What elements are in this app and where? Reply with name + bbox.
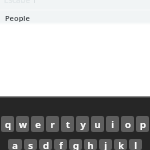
staticText: p xyxy=(140,118,146,131)
button[interactable]: o xyxy=(121,116,134,132)
staticText: j xyxy=(104,139,107,150)
button[interactable]: u xyxy=(91,116,104,132)
button[interactable]: s xyxy=(24,139,37,150)
button[interactable]: g xyxy=(69,139,82,150)
staticText: a xyxy=(12,139,18,150)
button[interactable]: e xyxy=(31,116,44,132)
button[interactable]: d xyxy=(39,139,52,150)
button[interactable]: w xyxy=(16,116,29,132)
button[interactable]: l xyxy=(129,139,142,150)
button[interactable]: q xyxy=(1,116,14,132)
staticText: s xyxy=(28,139,33,150)
button[interactable]: i xyxy=(106,116,119,132)
button[interactable]: People xyxy=(0,11,150,22)
staticText: Escape xyxy=(4,0,31,3)
button[interactable]: j xyxy=(99,139,112,150)
staticText: g xyxy=(73,139,79,150)
staticText: y xyxy=(80,118,86,131)
staticText: People xyxy=(5,13,30,23)
staticText: k xyxy=(118,139,124,150)
staticText: i xyxy=(111,118,114,131)
staticText: r xyxy=(50,118,55,131)
button[interactable]: p xyxy=(136,116,149,132)
button[interactable]: r xyxy=(46,116,59,132)
button[interactable]: f xyxy=(54,139,67,150)
button[interactable]: t xyxy=(61,116,74,132)
button[interactable]: k xyxy=(114,139,127,150)
staticText: h xyxy=(87,139,94,150)
button[interactable]: h xyxy=(84,139,97,150)
staticText: f xyxy=(59,139,63,150)
staticText: d xyxy=(43,139,49,150)
staticText: u xyxy=(94,118,101,131)
button[interactable]: y xyxy=(76,116,89,132)
staticText: w xyxy=(19,118,27,131)
staticText: l xyxy=(134,139,137,150)
button[interactable]: a xyxy=(8,139,22,150)
staticText: q xyxy=(5,118,11,131)
staticText: e xyxy=(35,118,41,131)
staticText: o xyxy=(125,118,131,131)
staticText: t xyxy=(66,118,70,131)
